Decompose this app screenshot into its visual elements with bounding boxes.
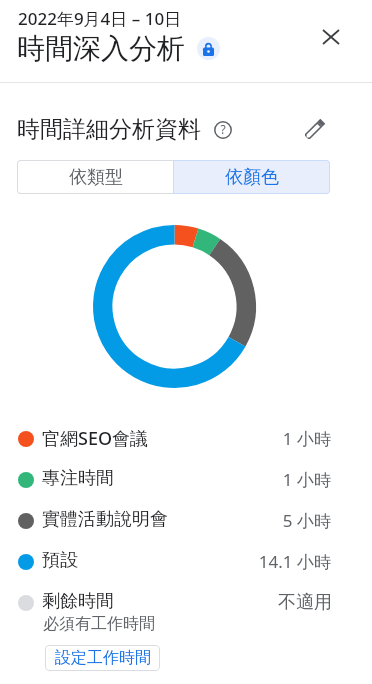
button[interactable]: 預設 <box>0 554 372 594</box>
staticText: 剩餘時間 <box>42 590 114 613</box>
button[interactable]: 設定工作時間 <box>45 645 160 671</box>
staticText: 實體活動說明會 <box>42 508 168 531</box>
button[interactable]: 專注時間 <box>0 472 372 512</box>
button[interactable]: 實體活動說明會 <box>0 513 372 553</box>
button[interactable]: Private event <box>197 37 220 60</box>
button[interactable]: 依類型 <box>17 160 174 194</box>
staticText: 專注時間 <box>42 467 114 490</box>
button[interactable]: 官網SEO會議 <box>0 431 372 471</box>
staticText: 預設 <box>42 549 78 572</box>
staticText: 時間深入分析 <box>17 31 185 66</box>
staticText: 依顏色 <box>225 166 279 189</box>
staticText: 不適用 <box>278 591 332 614</box>
button[interactable]: Help <box>211 118 235 142</box>
staticText: 依類型 <box>69 166 123 189</box>
button[interactable]: 剩餘時間 <box>0 595 372 684</box>
staticText: 14.1 小時 <box>200 550 331 573</box>
staticText: 2022年9月4日 – 10日 <box>18 7 182 30</box>
staticText: 1 小時 <box>200 427 331 450</box>
staticText: ? <box>220 121 226 137</box>
button[interactable]: Close <box>313 19 349 55</box>
staticText: 1 小時 <box>200 468 331 491</box>
staticText: 必須有工作時間 <box>43 614 155 634</box>
button[interactable]: 依顏色 <box>173 160 330 194</box>
staticText: 5 小時 <box>200 509 331 532</box>
staticText: 時間詳細分析資料 <box>17 115 201 144</box>
staticText: 官網SEO會議 <box>42 426 149 451</box>
button[interactable]: Edit <box>303 117 327 141</box>
staticText: 設定工作時間 <box>55 648 151 668</box>
